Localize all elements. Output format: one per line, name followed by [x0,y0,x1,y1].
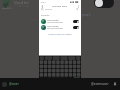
button[interactable] [65,72,69,76]
button[interactable] [53,72,57,76]
button[interactable] [61,60,65,64]
button[interactable] [61,64,65,68]
button[interactable] [39,72,44,76]
button[interactable] [69,60,73,64]
button[interactable] [46,56,53,60]
staticText: Enabled [41,14,50,17]
button[interactable] [73,64,77,68]
button[interactable] [57,72,61,76]
button[interactable]: Enabled switch [73,20,79,23]
button[interactable] [77,64,81,68]
button[interactable] [73,68,77,72]
button[interactable] [53,56,60,60]
button[interactable] [57,60,61,64]
button[interactable] [49,64,53,68]
button[interactable] [67,56,74,60]
button[interactable] [69,68,73,72]
button[interactable]: Profile [112,81,118,87]
staticText: Used for [14,0,30,5]
button[interactable] [69,72,73,76]
button[interactable]: Enabled switch [73,26,79,29]
button[interactable] [61,68,65,72]
staticText: App name [47,24,59,27]
button[interactable] [53,64,57,68]
button[interactable]: Channel avatar [2,82,7,87]
staticText: Search [45,8,53,11]
button[interactable] [61,72,65,76]
button[interactable]: App name [41,24,79,30]
button[interactable] [69,64,73,68]
button[interactable] [74,56,81,60]
staticText: Manage apps [52,4,68,7]
button[interactable]: Show all apps on device [39,32,81,36]
button[interactable] [39,60,44,64]
staticText: Show all apps on device [48,33,72,36]
button[interactable] [44,60,49,64]
staticText: com.example.app [47,27,63,30]
button[interactable] [44,64,49,68]
button[interactable] [65,60,69,64]
staticText: App name [47,18,59,21]
button[interactable] [65,64,69,68]
button[interactable]: App name [41,18,79,24]
button[interactable] [77,68,81,72]
button[interactable] [44,72,49,76]
button[interactable] [44,68,49,72]
button[interactable] [39,56,46,60]
button[interactable]: Enter [74,76,81,82]
button[interactable] [57,64,61,68]
button[interactable]: Period [69,76,74,82]
staticText: com.example.app [47,21,63,24]
button[interactable] [60,56,67,60]
button[interactable] [73,72,77,76]
button[interactable] [57,68,61,72]
button[interactable]: Toggle [94,0,114,8]
button[interactable] [73,60,77,64]
button[interactable] [39,68,44,72]
button[interactable]: Symbols [39,76,46,82]
staticText: port [82,12,91,17]
button[interactable] [53,68,57,72]
button[interactable] [77,72,81,76]
staticText: 9:41 [41,0,46,3]
button[interactable]: Back [40,4,44,8]
staticText: @user [9,82,19,86]
button[interactable] [77,60,81,64]
button[interactable] [49,72,53,76]
button[interactable] [39,64,44,68]
button[interactable] [49,60,53,64]
button[interactable] [49,68,53,72]
button[interactable]: Space [46,76,69,82]
button[interactable]: Search [41,8,79,11]
button[interactable]: More options [76,4,80,8]
button[interactable] [65,68,69,72]
button[interactable] [53,60,57,64]
staticText: @someuser [91,82,109,86]
